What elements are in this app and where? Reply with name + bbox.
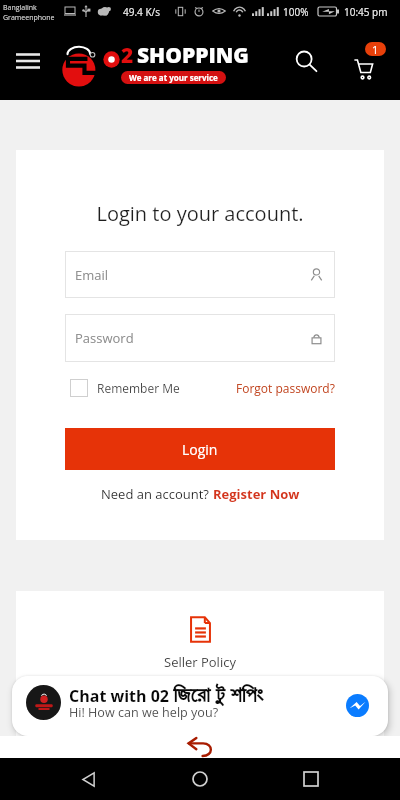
button[interactable]: Remember Me	[65, 379, 180, 397]
staticText: Email	[75, 266, 109, 284]
staticText: Login to your account.	[96, 200, 304, 227]
button[interactable]: Register Now	[213, 485, 300, 503]
staticText: 100%	[283, 5, 309, 19]
staticText: Forgot password?	[236, 380, 335, 396]
staticText: 1	[372, 42, 379, 56]
button[interactable]: Chat with 02 জিরো টু শপিং	[12, 676, 388, 736]
staticText: 10:45 pm	[344, 5, 388, 19]
staticText: 49.4 K/s	[123, 5, 160, 19]
button[interactable]: Menu	[10, 43, 46, 79]
staticText: Seller Policy	[164, 653, 236, 671]
button[interactable]: Forgot password?	[236, 380, 335, 396]
button[interactable]: Home	[178, 758, 222, 800]
button[interactable]: Recents	[289, 758, 333, 800]
button[interactable]: Email	[65, 251, 335, 298]
staticText: Chat with 02 জিরো টু শপিং	[69, 685, 264, 707]
staticText: Hi! How can we help you?	[69, 704, 219, 721]
button[interactable]: Cart	[348, 39, 392, 83]
staticText: SHOPPING	[137, 41, 249, 70]
staticText: 2	[121, 41, 134, 70]
staticText: Register Now	[213, 485, 300, 503]
button[interactable]: Login	[65, 428, 335, 470]
button[interactable]: Back	[67, 758, 111, 800]
staticText: Grameenphone	[3, 13, 55, 23]
staticText: Banglalink	[3, 3, 37, 13]
button[interactable]: Password	[65, 314, 335, 362]
staticText: Password	[75, 329, 134, 347]
staticText: Remember Me	[97, 380, 180, 396]
staticText: We are at your service	[129, 72, 218, 83]
button[interactable]: Search	[289, 44, 325, 80]
staticText: Login	[182, 440, 218, 459]
staticText: Need an account?	[101, 485, 213, 503]
